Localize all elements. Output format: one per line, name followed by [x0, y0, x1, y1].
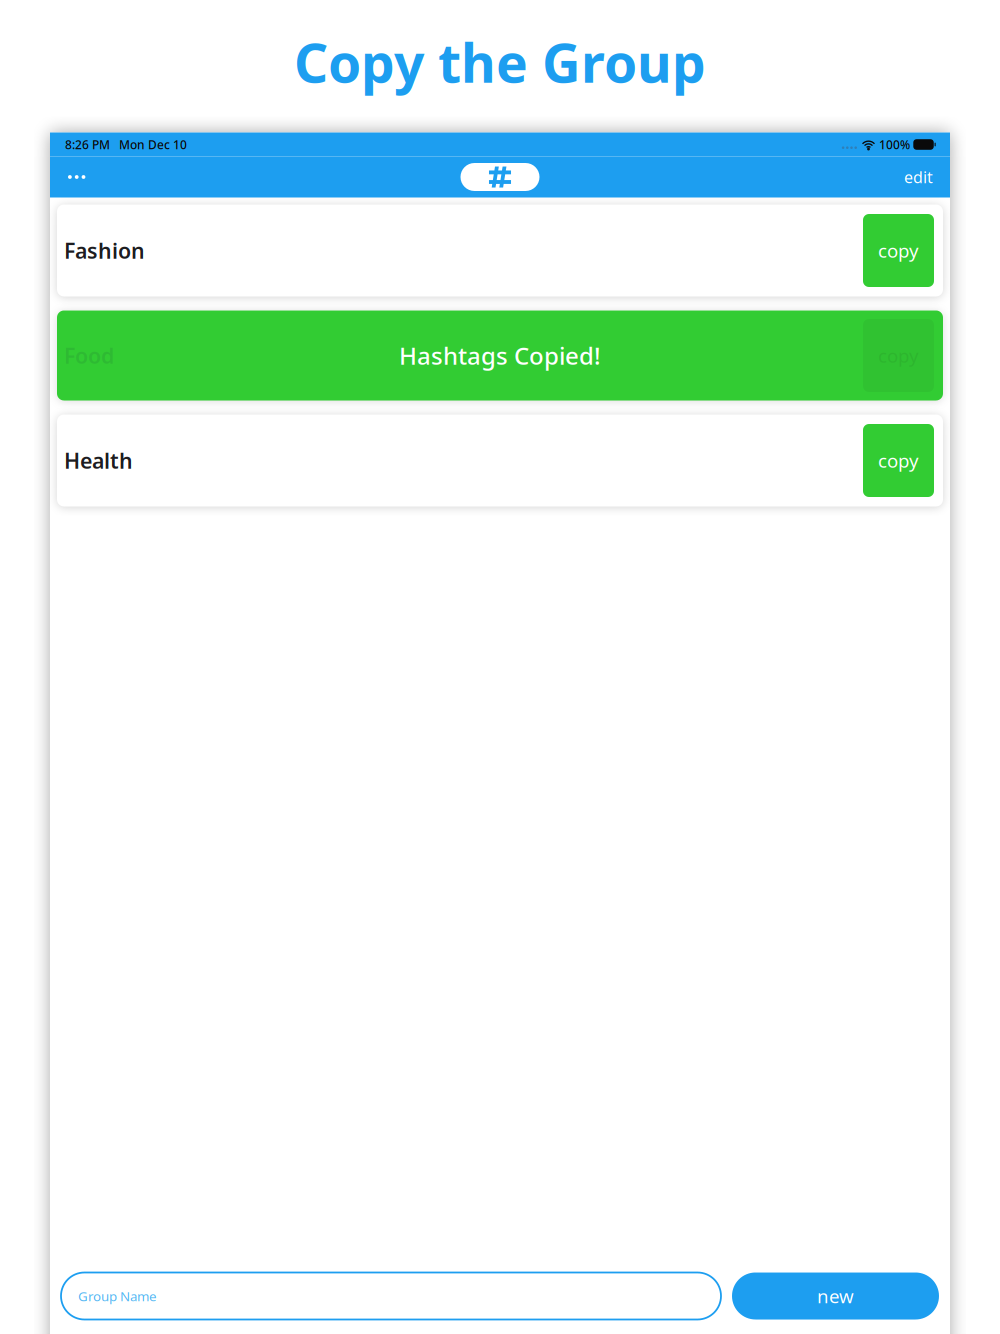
staticText: 8:26 PM [65, 136, 110, 152]
staticText: copy [878, 343, 919, 368]
staticText: edit [904, 166, 933, 188]
staticText: new [817, 1284, 854, 1308]
staticText: copy [878, 448, 919, 473]
staticText: Mon Dec 10 [119, 136, 187, 152]
button[interactable]: Hashtag group [460, 163, 539, 191]
button[interactable]: edit [871, 156, 950, 197]
staticText: Fashion [64, 236, 145, 265]
button[interactable]: More options [50, 156, 130, 197]
button[interactable]: new [732, 1272, 939, 1319]
button[interactable]: Health [57, 414, 943, 506]
staticText: copy [878, 238, 919, 263]
staticText: Group Name [78, 1287, 157, 1305]
staticText: Food [64, 341, 114, 370]
button[interactable]: Fashion [57, 204, 943, 296]
staticText: Copy the Group [294, 27, 706, 97]
staticText: Hashtags Copied! [399, 340, 601, 371]
staticText: Health [64, 446, 133, 475]
staticText: 100% [879, 136, 910, 152]
